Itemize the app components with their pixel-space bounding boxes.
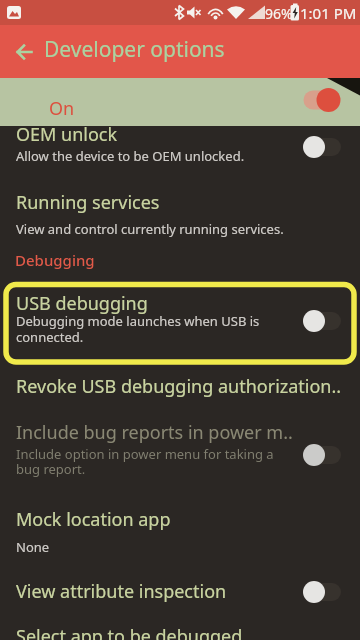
staticText: Revoke USB debugging authorization.. [16,374,342,399]
staticText: Developer options [44,35,225,64]
button[interactable] [0,114,360,176]
staticText: USB debugging [16,291,148,316]
button[interactable] [0,412,360,490]
staticText: Running services [16,190,160,215]
staticText: Allow the device to be OEM unlocked. [16,147,245,165]
staticText: OEM unlock [16,122,118,147]
staticText: Debugging mode launches when USB is [16,312,260,330]
button[interactable] [0,570,360,615]
button[interactable] [0,183,360,243]
button[interactable] [0,368,360,406]
staticText: Debugging [15,250,95,270]
button[interactable] [0,25,48,78]
button[interactable]: On [0,78,360,126]
staticText: bug report. [16,460,86,478]
staticText: Include bug reports in power m.. [16,420,293,445]
staticText: View and control currently running servi… [16,220,284,238]
staticText: Include option in power menu for taking … [16,445,274,463]
staticText: View attribute inspection [16,579,227,604]
staticText: connected. [16,328,84,346]
staticText: 96% [265,4,293,23]
staticText: On [49,96,75,121]
button[interactable] [0,620,360,640]
button[interactable] [0,500,360,560]
staticText: Mock location app [16,507,171,532]
staticText: None [16,538,50,556]
staticText: Select app to be debugged [16,624,243,640]
button[interactable] [0,282,360,365]
staticText: 1:01 PM [300,3,357,23]
